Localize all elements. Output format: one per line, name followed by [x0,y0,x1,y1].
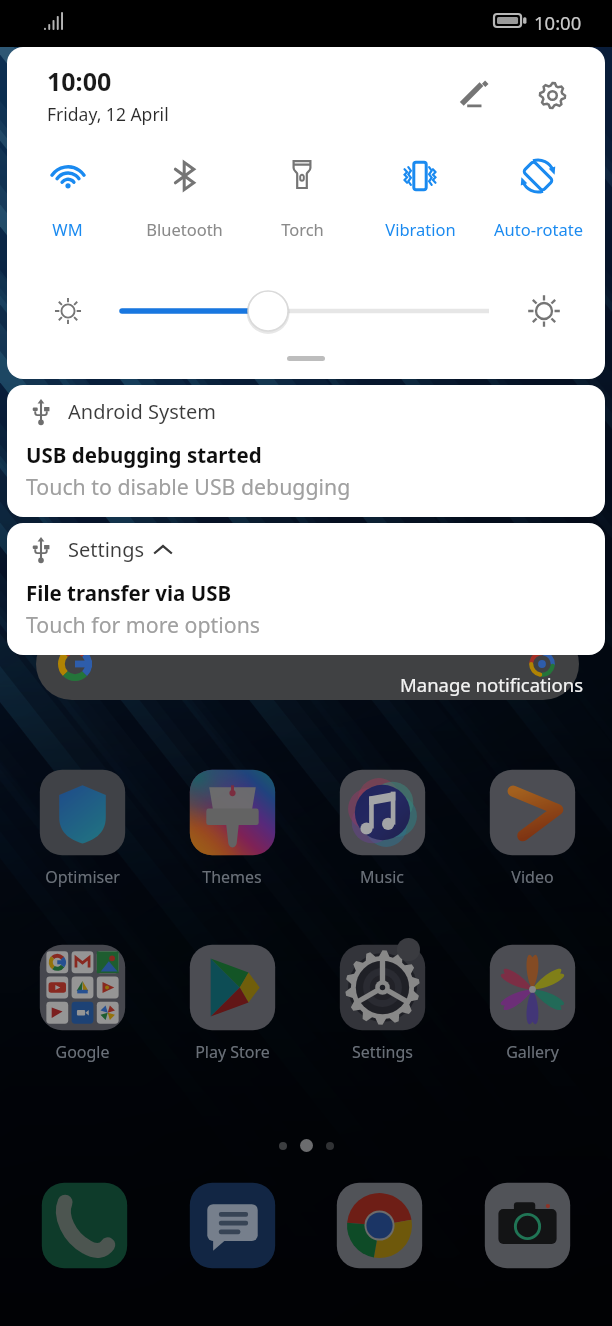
button[interactable]: Phone [36,1177,133,1274]
button[interactable]: Camera [479,1177,576,1274]
button[interactable]: Messages [184,1177,281,1274]
button[interactable]: Google [27,939,137,1063]
button[interactable]: Vibration [361,154,479,242]
button[interactable] [36,628,579,700]
staticText: Gallery [506,1041,559,1063]
button[interactable]: Edit [451,72,497,118]
button[interactable]: Torch [243,154,361,242]
staticText: 10:00 [534,10,582,35]
button[interactable]: Gallery [477,939,587,1063]
button[interactable]: Settings [7,523,605,655]
staticText: Video [511,866,554,888]
staticText: Touch to disable USB debugging [26,472,351,501]
button[interactable]: Auto-rotate [479,154,597,242]
button[interactable]: Chrome [331,1177,428,1274]
staticText: Android System [68,398,217,425]
button[interactable]: Settings [529,72,575,118]
staticText: Themes [202,866,262,888]
staticText: File transfer via USB [26,579,232,607]
staticText: Bluetooth [146,218,223,240]
button[interactable]: Themes [177,764,287,888]
staticText: Friday, 12 April [47,102,169,126]
button[interactable]: Play Store [177,939,287,1063]
button[interactable]: Optimiser [27,764,137,888]
staticText: Music [360,866,404,888]
staticText: Google [55,1041,110,1063]
button[interactable]: Settings [327,939,437,1063]
staticText: Settings [352,1041,413,1063]
staticText: Optimiser [45,866,120,888]
staticText: 10:00 [47,64,112,98]
staticText: Manage notifications [400,672,584,697]
staticText: Settings [68,536,145,563]
staticText: Play Store [195,1041,270,1063]
staticText: Vibration [385,218,456,240]
staticText: Touch for more options [26,610,260,639]
staticText: USB debugging started [26,441,262,469]
button[interactable]: Video [477,764,587,888]
button[interactable]: Manage notifications [394,668,590,701]
button[interactable]: WM [9,154,126,242]
button[interactable]: Bluetooth [126,154,243,242]
button[interactable]: Android System [7,385,605,517]
staticText: Torch [281,218,324,240]
staticText: WM [52,218,83,240]
button[interactable]: Music [327,764,437,888]
staticText: Auto-rotate [494,218,583,240]
